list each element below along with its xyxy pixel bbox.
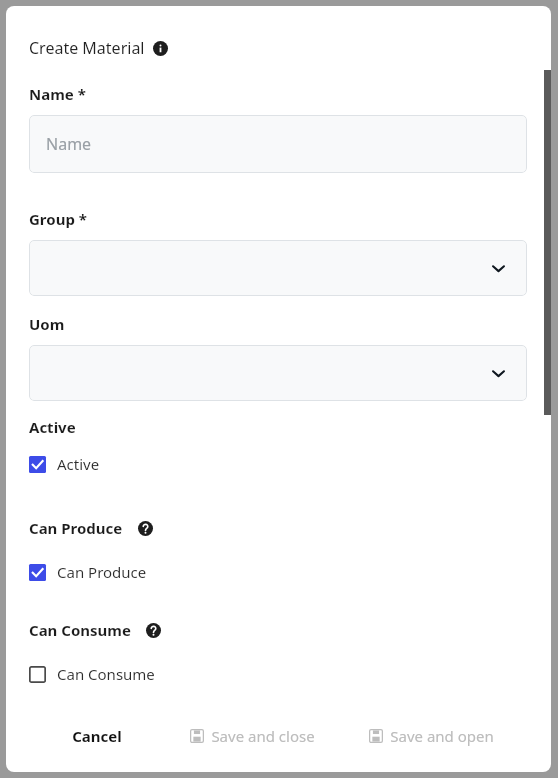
staticText: Group * (29, 209, 87, 229)
staticText: Active (57, 454, 100, 474)
button[interactable]: Name (29, 115, 527, 173)
staticText: Can Consume (29, 620, 131, 640)
button[interactable]: Help (146, 623, 161, 638)
button[interactable]: Cancel (64, 720, 130, 752)
staticText: Can Produce (57, 562, 147, 582)
staticText: Cancel (72, 726, 122, 746)
staticText: Name (46, 133, 92, 155)
staticText: Active (29, 417, 76, 437)
button[interactable] (29, 240, 527, 296)
button[interactable]: Can Consume (29, 664, 155, 684)
staticText: Can Consume (57, 664, 155, 684)
button[interactable] (29, 345, 527, 401)
button[interactable]: Help (138, 521, 153, 536)
button[interactable]: Save and close (182, 720, 323, 752)
staticText: Save and close (211, 726, 315, 746)
staticText: Save and open (390, 726, 494, 746)
staticText: Create Material (29, 37, 145, 59)
staticText: Uom (29, 314, 65, 334)
button[interactable]: Can Produce (29, 562, 147, 582)
button[interactable]: Active (29, 454, 100, 474)
button[interactable]: Information (153, 41, 168, 56)
button[interactable]: Save and open (361, 720, 502, 752)
staticText: Name * (29, 84, 86, 104)
staticText: Can Produce (29, 518, 123, 538)
